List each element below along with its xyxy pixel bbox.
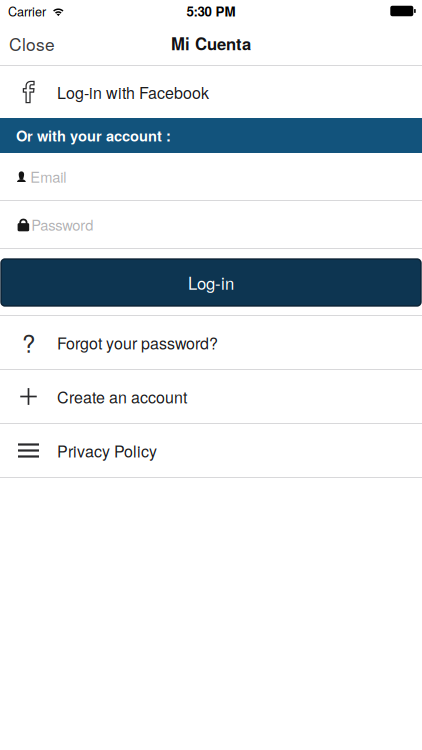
button[interactable]: Email: [0, 153, 422, 200]
staticText: Create an account: [57, 385, 187, 408]
staticText: Forgot your password?: [57, 331, 218, 354]
button[interactable]: Password: [0, 201, 422, 248]
button[interactable]: Create an account: [0, 370, 422, 423]
staticText: Mi Cuenta: [171, 32, 251, 55]
staticText: Email: [30, 166, 66, 187]
button[interactable]: ?: [0, 316, 422, 369]
staticText: Privacy Policy: [57, 439, 157, 462]
button[interactable]: Privacy Policy: [0, 424, 422, 477]
staticText: 5:30 PM: [186, 1, 235, 21]
staticText: Or with your account :: [16, 125, 171, 146]
staticText: Close: [9, 31, 55, 56]
staticText: ?: [22, 325, 35, 360]
staticText: Log-in with Facebook: [57, 80, 209, 103]
staticText: Password: [31, 214, 93, 235]
staticText: Log-in: [188, 271, 234, 294]
button[interactable]: Log-in: [0, 249, 422, 315]
staticText: Carrier: [8, 2, 46, 20]
button[interactable]: Log-in with Facebook: [0, 66, 422, 118]
button[interactable]: Close: [0, 22, 64, 65]
